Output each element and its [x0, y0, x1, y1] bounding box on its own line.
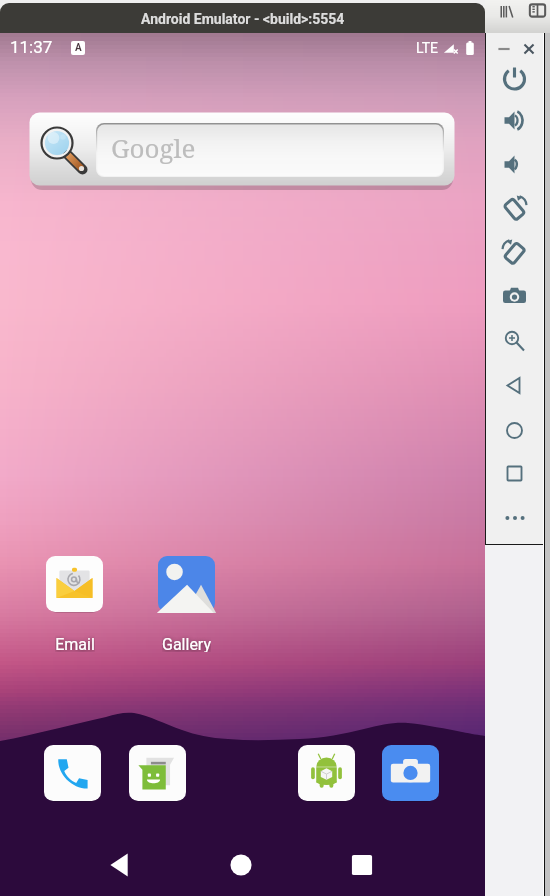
- button[interactable]: Email: [34, 556, 114, 652]
- button[interactable]: Google search: [29, 112, 455, 190]
- button[interactable]: More: [486, 497, 543, 539]
- staticText: A: [75, 42, 82, 54]
- button[interactable]: Take screenshot: [486, 275, 543, 317]
- button[interactable]: Volume down: [486, 143, 543, 185]
- button[interactable]: Back: [486, 364, 543, 406]
- staticText: Gallery: [162, 635, 211, 652]
- button[interactable]: [121, 737, 194, 810]
- staticText: 11:37: [10, 37, 53, 57]
- button[interactable]: Close: [517, 37, 541, 61]
- button[interactable]: Navigation: [338, 841, 386, 889]
- staticText: Google: [111, 130, 196, 165]
- button[interactable]: [374, 737, 447, 810]
- button[interactable]: Navigation: [217, 841, 265, 889]
- button[interactable]: Rotate left: [486, 186, 543, 228]
- button[interactable]: Zoom: [486, 320, 543, 362]
- button[interactable]: [290, 737, 363, 810]
- button[interactable]: Gallery: [146, 556, 226, 652]
- button[interactable]: Overview: [486, 452, 543, 494]
- button[interactable]: Sidebar: [529, 2, 546, 19]
- staticText: Android Emulator - <build>:5554: [141, 11, 345, 27]
- button[interactable]: Navigation: [96, 841, 144, 889]
- button[interactable]: Power: [486, 56, 543, 98]
- staticText: LTE: [416, 40, 438, 56]
- button[interactable]: Library: [499, 4, 515, 20]
- button[interactable]: Rotate right: [486, 230, 543, 272]
- button[interactable]: Minimize: [492, 37, 516, 61]
- button[interactable]: [36, 737, 109, 810]
- button[interactable]: Home: [486, 409, 543, 451]
- staticText: Email: [55, 635, 95, 652]
- button[interactable]: Volume up: [486, 99, 543, 141]
